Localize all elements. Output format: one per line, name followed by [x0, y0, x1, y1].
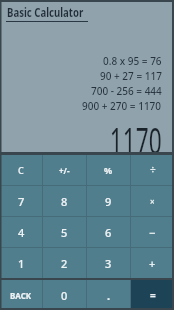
button[interactable]: 2	[43, 248, 86, 278]
staticText: %	[104, 164, 113, 176]
staticText: +/-	[59, 165, 70, 176]
staticText: Basic Calculator	[7, 4, 84, 20]
button[interactable]: BACK	[0, 280, 42, 310]
button[interactable]: +	[131, 248, 174, 278]
staticText: C	[18, 164, 24, 176]
staticText: 2	[61, 256, 68, 271]
staticText: 8	[61, 194, 68, 209]
staticText: 1170	[110, 116, 162, 165]
staticText: BACK	[10, 290, 32, 301]
staticText: .	[107, 288, 111, 303]
button[interactable]: =	[131, 280, 174, 310]
staticText: 7	[18, 194, 25, 209]
staticText: ×	[150, 196, 155, 207]
staticText: 1	[18, 256, 25, 271]
button[interactable]: +/-	[43, 155, 86, 185]
staticText: 6	[105, 225, 112, 240]
button[interactable]: 4	[0, 217, 42, 247]
staticText: =	[150, 288, 156, 302]
button[interactable]: .	[87, 280, 130, 310]
button[interactable]: %	[87, 155, 130, 185]
button[interactable]: 9	[87, 186, 130, 216]
button[interactable]: 3	[87, 248, 130, 278]
button[interactable]: 6	[87, 217, 130, 247]
staticText: ÷	[150, 163, 156, 177]
button[interactable]: 7	[0, 186, 42, 216]
button[interactable]: ×	[131, 186, 174, 216]
button[interactable]: 0	[43, 280, 86, 310]
button[interactable]: 5	[43, 217, 86, 247]
staticText: 5	[61, 225, 68, 240]
button[interactable]: C	[0, 155, 42, 185]
staticText: 900 + 270 = 1170	[82, 99, 162, 113]
button[interactable]: ÷	[131, 155, 174, 185]
button[interactable]: 1	[0, 248, 42, 278]
button[interactable]: −	[131, 217, 174, 247]
staticText: 90 + 27 = 117	[100, 69, 162, 83]
staticText: 0	[61, 288, 68, 303]
staticText: 3	[105, 256, 112, 271]
button[interactable]: 8	[43, 186, 86, 216]
staticText: 700 - 256 = 444	[91, 84, 162, 98]
staticText: 4	[18, 225, 25, 240]
staticText: −	[149, 225, 156, 240]
staticText: +	[149, 256, 156, 271]
staticText: 9	[105, 194, 112, 209]
staticText: 0.8 x 95 = 76	[103, 54, 162, 68]
